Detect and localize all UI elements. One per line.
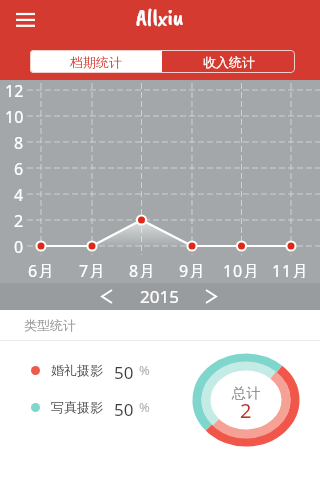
button[interactable]: Menu <box>10 6 40 34</box>
staticText: 0 <box>14 236 24 256</box>
button[interactable]: 写真摄影 <box>31 398 150 416</box>
staticText: 11月 <box>272 260 310 278</box>
staticText: 写真摄影 <box>51 399 103 415</box>
staticText: 10月 <box>223 260 261 278</box>
staticText: % <box>139 361 150 379</box>
staticText: 2015 <box>140 285 179 308</box>
staticText: 12 <box>5 80 24 100</box>
staticText: 8 <box>14 132 24 152</box>
staticText: 10 <box>5 106 24 126</box>
staticText: 收入统计 <box>203 54 255 70</box>
staticText: 婚礼摄影 <box>51 362 103 378</box>
staticText: 6月 <box>28 260 55 278</box>
staticText: 50 <box>114 398 134 416</box>
button[interactable]: 收入统计 <box>162 50 295 73</box>
staticText: 2 <box>14 210 24 230</box>
button[interactable]: Next year <box>197 283 225 310</box>
button[interactable]: 档期统计 <box>30 50 162 73</box>
staticText: 档期统计 <box>70 54 122 70</box>
button[interactable]: Previous year <box>93 283 121 310</box>
staticText: 50 <box>114 361 134 379</box>
staticText: 6 <box>14 158 24 178</box>
staticText: 4 <box>14 184 24 204</box>
staticText: 7月 <box>79 260 106 278</box>
staticText: Allxiu <box>136 3 184 32</box>
button[interactable]: 婚礼摄影 <box>31 361 150 379</box>
staticText: 总计 <box>231 385 261 403</box>
staticText: 类型统计 <box>24 317 76 333</box>
staticText: 8月 <box>129 260 156 278</box>
staticText: 9月 <box>179 260 206 278</box>
staticText: % <box>139 398 150 416</box>
staticText: 2 <box>240 397 252 424</box>
